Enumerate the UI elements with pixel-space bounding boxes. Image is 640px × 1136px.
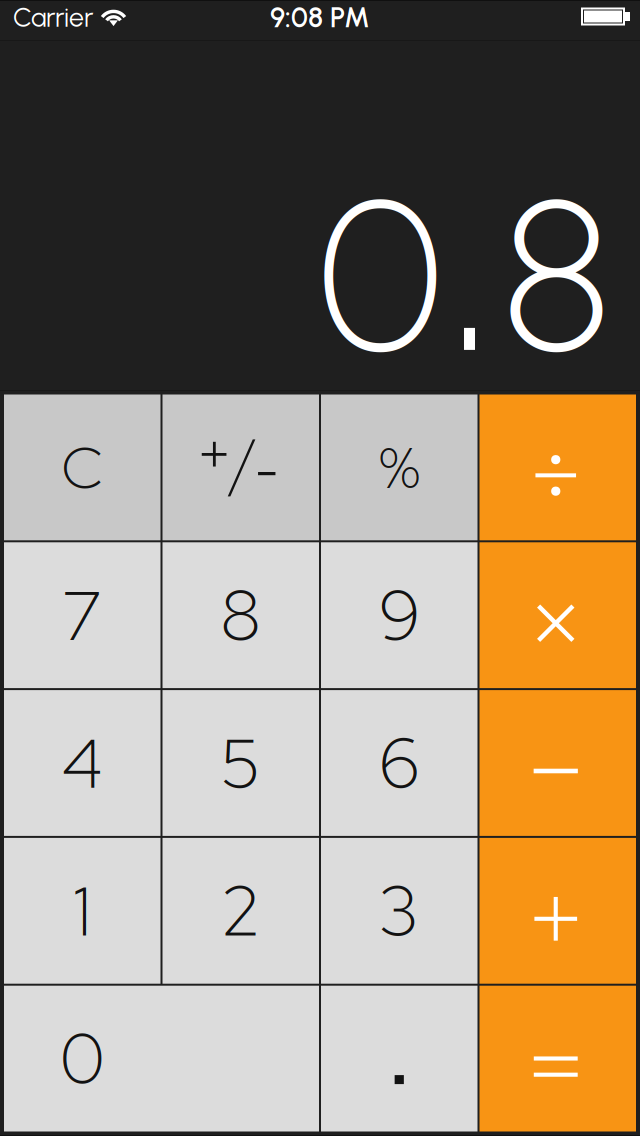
staticText: 6 [378,717,420,809]
button[interactable]: 7 [4,542,160,688]
button[interactable]: 4 [4,690,160,836]
button[interactable]: 9 [321,542,477,688]
staticText: 3 [378,865,420,957]
staticText: % [379,429,420,506]
button[interactable] [162,394,319,540]
button[interactable]: C [4,394,160,540]
staticText: 7 [61,569,103,661]
staticText: 1 [73,865,91,957]
staticText: 0 [318,149,443,402]
staticText: 9:08 PM [270,1,370,34]
button[interactable]: Decimal point [321,986,477,1131]
button[interactable]: 0 [4,986,319,1131]
button[interactable]: Plus [479,838,636,984]
staticText: 5 [220,717,262,809]
staticText: Carrier [13,1,94,33]
button[interactable]: 2 [162,838,319,984]
staticText: 8 [502,149,611,402]
staticText: 4 [62,717,103,809]
staticText: 9 [378,569,420,661]
staticText: C [61,429,103,506]
staticText: 2 [220,865,262,957]
button[interactable]: 8 [162,542,319,688]
button[interactable]: 6 [321,690,477,836]
button[interactable]: 3 [321,838,477,984]
button[interactable]: Minus [479,690,636,836]
button[interactable]: 5 [162,690,319,836]
button[interactable]: 1 [4,838,160,984]
staticText: 8 [220,569,262,661]
button[interactable]: Equals [479,986,636,1131]
button[interactable]: Multiply [479,542,636,688]
staticText: 0 [60,1013,105,1104]
button[interactable]: Divide [479,394,636,540]
button[interactable]: % [321,394,477,540]
